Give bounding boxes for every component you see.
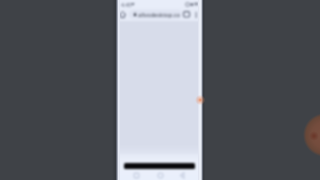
button[interactable]: Back bbox=[175, 170, 189, 180]
button[interactable]: Recent apps bbox=[129, 170, 143, 180]
button[interactable] bbox=[124, 163, 195, 169]
staticText: 4:45 bbox=[121, 1, 132, 8]
button[interactable]: allvodesktop.com bbox=[129, 10, 182, 19]
button[interactable]: Tabs bbox=[181, 9, 192, 20]
button[interactable]: Home bbox=[117, 9, 128, 20]
button[interactable]: More options bbox=[192, 10, 201, 19]
staticText: allvodesktop.com bbox=[138, 11, 182, 18]
button[interactable]: Home bbox=[153, 170, 167, 180]
